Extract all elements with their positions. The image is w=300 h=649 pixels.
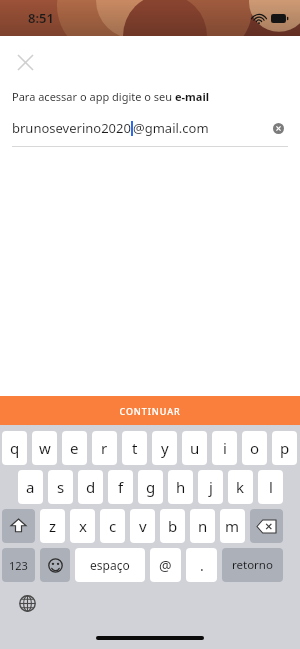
staticText: r (101, 438, 108, 458)
button[interactable]: h (168, 470, 193, 504)
button[interactable]: t (122, 431, 147, 465)
staticText: q (10, 438, 20, 458)
button[interactable]: retorno (222, 548, 283, 582)
staticText: espaço (90, 557, 130, 573)
button[interactable]: 123 (2, 548, 35, 582)
staticText: t (132, 438, 138, 458)
staticText: u (190, 438, 200, 458)
button[interactable]: u (182, 431, 207, 465)
button[interactable]: z (40, 509, 65, 543)
staticText: o (250, 438, 260, 458)
button[interactable]: f (108, 470, 133, 504)
button[interactable]: . (186, 548, 217, 582)
button[interactable]: @ (150, 548, 181, 582)
button[interactable]: a (18, 470, 43, 504)
staticText: m (225, 516, 240, 536)
button[interactable]: j (198, 470, 223, 504)
staticText: e (70, 438, 79, 458)
button[interactable]: Shift (2, 509, 35, 543)
staticText: y (161, 438, 169, 458)
staticText: . (200, 556, 204, 575)
button[interactable]: s (48, 470, 73, 504)
button[interactable]: Trocar idioma (15, 591, 39, 615)
staticText: s (57, 477, 65, 497)
staticText: n (198, 516, 208, 536)
button[interactable]: CONTINUAR (0, 396, 300, 425)
button[interactable]: c (100, 509, 125, 543)
staticText: retorno (232, 557, 273, 573)
button[interactable]: l (258, 470, 283, 504)
button[interactable]: Limpar texto (268, 118, 288, 138)
staticText: j (209, 477, 213, 497)
staticText: b (168, 516, 178, 536)
staticText: i (223, 438, 227, 458)
staticText: a (26, 477, 35, 497)
staticText: p (280, 438, 290, 458)
button[interactable]: Emoji (40, 548, 70, 582)
staticText: brunoseverino2020 (12, 119, 131, 137)
staticText: h (176, 477, 186, 497)
button[interactable]: m (220, 509, 245, 543)
button[interactable]: w (32, 431, 57, 465)
button[interactable]: espaço (75, 548, 145, 582)
button[interactable]: Fechar (8, 45, 42, 79)
button[interactable]: q (2, 431, 27, 465)
staticText: Para acessar o app digite o seu (12, 89, 175, 104)
staticText: c (109, 516, 117, 536)
staticText: 8:51 (28, 9, 54, 27)
staticText: x (79, 516, 87, 536)
staticText: @ (159, 556, 172, 575)
button[interactable]: g (138, 470, 163, 504)
staticText: z (49, 516, 57, 536)
button[interactable]: d (78, 470, 103, 504)
button[interactable]: x (70, 509, 95, 543)
button[interactable]: b (160, 509, 185, 543)
staticText: l (269, 477, 273, 497)
staticText: f (118, 477, 124, 497)
staticText: v (139, 516, 147, 536)
button[interactable]: e (62, 431, 87, 465)
staticText: 123 (9, 558, 28, 573)
button[interactable]: r (92, 431, 117, 465)
staticText: d (86, 477, 96, 497)
button[interactable]: k (228, 470, 253, 504)
staticText: e-mail (175, 89, 209, 104)
staticText: k (236, 477, 245, 497)
button[interactable]: i (212, 431, 237, 465)
button[interactable]: n (190, 509, 215, 543)
button[interactable]: brunoseverino2020 (12, 116, 288, 140)
button[interactable]: o (242, 431, 267, 465)
button[interactable]: p (272, 431, 297, 465)
button[interactable]: y (152, 431, 177, 465)
button[interactable]: Apagar (250, 509, 283, 543)
staticText: CONTINUAR (119, 405, 181, 417)
staticText: g (146, 477, 156, 497)
button[interactable]: v (130, 509, 155, 543)
staticText: @gmail.com (133, 119, 209, 137)
staticText: w (39, 438, 51, 458)
